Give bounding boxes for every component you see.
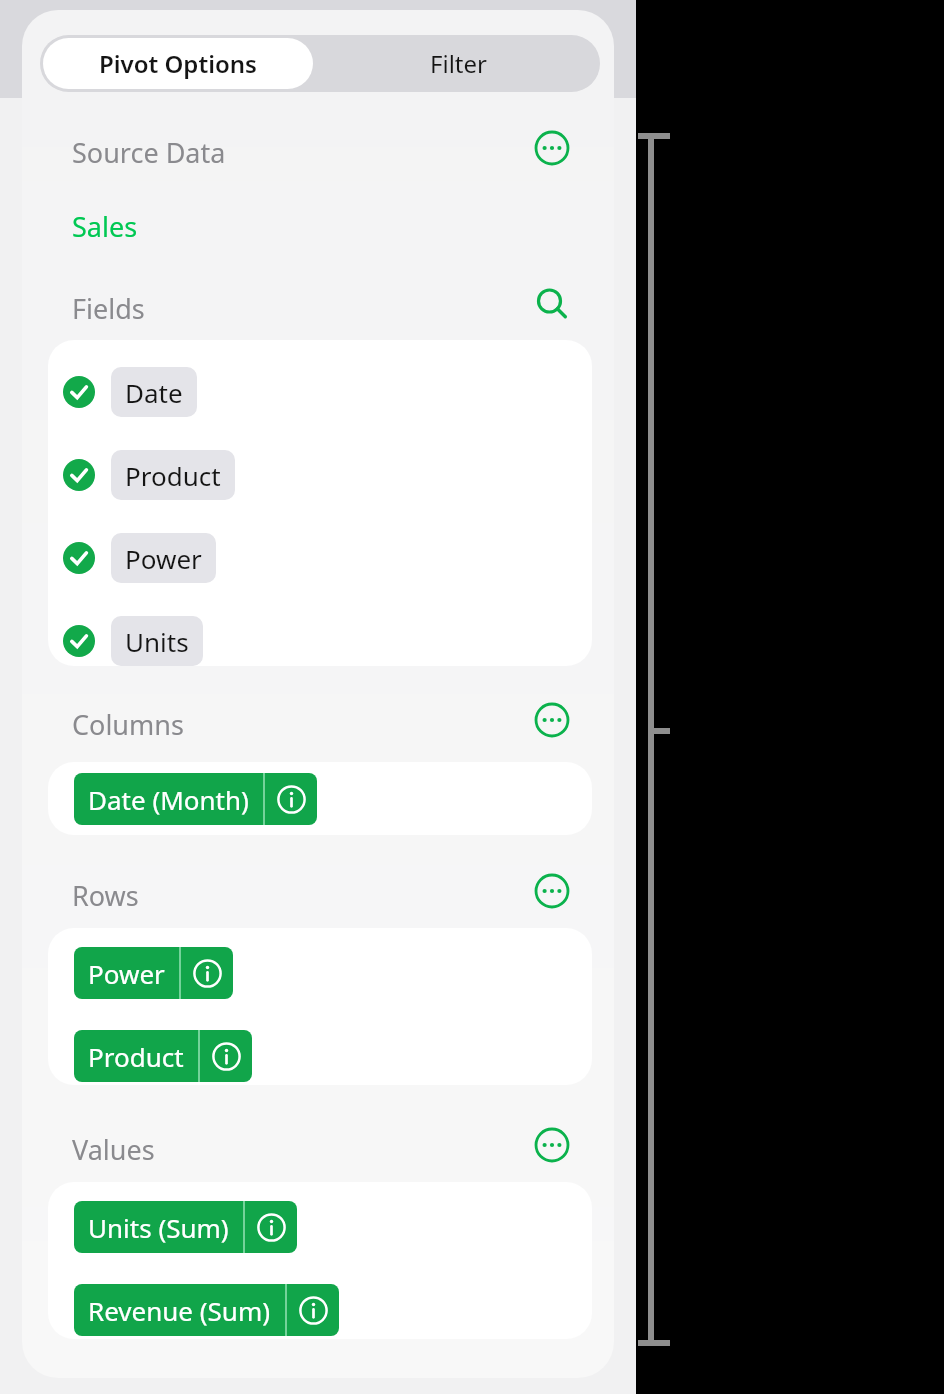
button[interactable]: Search fields — [531, 283, 573, 325]
staticText: Date (Month) — [88, 782, 249, 817]
button[interactable]: Info about Power — [181, 947, 233, 999]
staticText: Rows — [72, 877, 139, 914]
button[interactable]: More options — [531, 1124, 573, 1166]
button[interactable]: Info about Product — [200, 1030, 252, 1082]
button[interactable]: Units (Sum) — [74, 1201, 297, 1253]
staticText: Date — [125, 375, 183, 409]
staticText: Power — [125, 541, 202, 575]
staticText: Product — [88, 1039, 184, 1074]
button[interactable]: Units — [58, 616, 203, 666]
staticText: Units (Sum) — [88, 1210, 229, 1245]
button[interactable]: Info about Date (Month) — [265, 773, 317, 825]
button[interactable]: More options — [531, 699, 573, 741]
button[interactable]: Pivot Options — [43, 38, 313, 89]
staticText: Sales — [72, 208, 138, 245]
button[interactable]: Date (Month) — [74, 773, 317, 825]
button[interactable]: Sales — [72, 208, 138, 245]
staticText: Pivot Options — [99, 47, 257, 80]
button[interactable]: Revenue (Sum) — [74, 1284, 339, 1336]
staticText: Filter — [430, 47, 487, 80]
staticText: Source Data — [72, 134, 226, 171]
staticText: Power — [88, 956, 165, 991]
button[interactable]: More options — [531, 127, 573, 169]
staticText: Columns — [72, 706, 184, 743]
staticText: Units — [125, 624, 189, 658]
staticText: Product — [125, 458, 221, 492]
button[interactable]: Product — [58, 450, 235, 500]
staticText: Revenue (Sum) — [88, 1293, 271, 1328]
button[interactable]: More options — [531, 870, 573, 912]
button[interactable]: Info about Units (Sum) — [245, 1201, 297, 1253]
button[interactable]: Filter — [316, 35, 600, 92]
button[interactable]: Product — [74, 1030, 252, 1082]
button[interactable]: Power — [74, 947, 233, 999]
button[interactable]: Date — [58, 367, 197, 417]
staticText: Fields — [72, 290, 145, 327]
button[interactable]: Power — [58, 533, 216, 583]
button[interactable]: Info about Revenue (Sum) — [287, 1284, 339, 1336]
staticText: Values — [72, 1131, 155, 1168]
